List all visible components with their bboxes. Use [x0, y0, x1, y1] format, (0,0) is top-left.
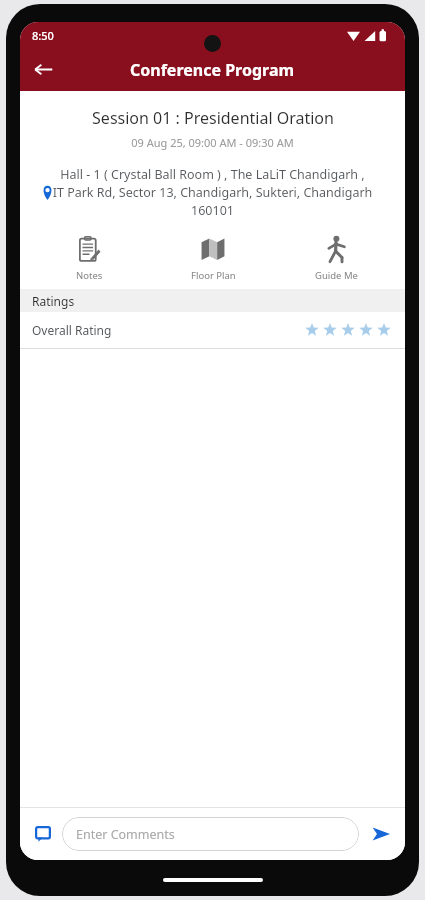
button[interactable]: Notes: [34, 233, 144, 284]
button[interactable]: Rate star: [375, 321, 393, 339]
staticText: 09 Aug 25, 09:00 AM - 09:30 AM: [131, 135, 294, 150]
staticText: Conference Program: [130, 59, 295, 81]
button[interactable]: Floor Plan: [158, 233, 268, 284]
staticText: Session 01 : Presidential Oration: [92, 107, 334, 129]
button[interactable]: Guide Me: [281, 233, 391, 284]
staticText: Floor Plan: [191, 269, 236, 282]
button[interactable]: Rate star: [357, 321, 375, 339]
staticText: Notes: [76, 269, 103, 282]
button[interactable]: Back: [20, 48, 66, 91]
staticText: Guide Me: [315, 269, 358, 282]
staticText: Hall - 1 ( Crystal Ball Room ) , The LaL…: [47, 166, 378, 219]
staticText: Ratings: [32, 293, 75, 309]
staticText: Overall Rating: [32, 322, 112, 338]
button[interactable]: Rate star: [321, 321, 339, 339]
button[interactable]: Rate star: [303, 321, 321, 339]
staticText: Enter Comments: [76, 826, 175, 843]
button[interactable]: Comments: [30, 821, 56, 847]
button[interactable]: Send: [367, 820, 395, 848]
button[interactable]: Rate star: [339, 321, 357, 339]
staticText: 8:50: [32, 28, 54, 43]
button[interactable]: Enter Comments: [62, 817, 359, 851]
button[interactable]: Overall Rating: [20, 312, 405, 348]
